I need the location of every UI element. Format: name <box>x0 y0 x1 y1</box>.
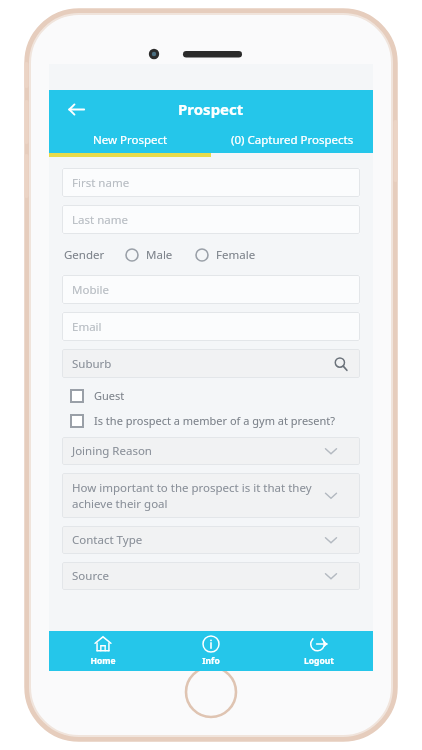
staticText: Gender <box>64 247 105 263</box>
staticText: Email <box>72 319 102 335</box>
staticText: Joining Reason <box>72 443 152 459</box>
button[interactable]: Contact Type <box>62 526 360 554</box>
button[interactable]: Back <box>61 94 91 124</box>
button[interactable]: How important to the prospect is it that… <box>62 473 360 518</box>
button[interactable]: Source <box>62 562 360 590</box>
staticText: Prospect <box>178 99 244 119</box>
staticText: Contact Type <box>72 532 143 548</box>
button[interactable]: Male <box>123 244 175 266</box>
staticText: New Prospect <box>93 132 168 148</box>
staticText: Home <box>90 655 116 667</box>
staticText: Logout <box>304 655 334 667</box>
staticText: Is the prospect a member of a gym at pre… <box>94 413 336 428</box>
staticText: Guest <box>94 388 125 403</box>
button[interactable]: Suburb <box>62 349 360 378</box>
button[interactable]: Info <box>157 631 265 671</box>
button[interactable]: Last name <box>62 205 360 234</box>
staticText: Source <box>72 568 109 584</box>
button[interactable]: Mobile <box>62 275 360 304</box>
staticText: Suburb <box>72 356 112 372</box>
button[interactable]: Joining Reason <box>62 437 360 465</box>
staticText: Last name <box>72 212 128 228</box>
button[interactable]: Home <box>49 631 157 671</box>
staticText: How important to the prospect is it that… <box>72 480 330 511</box>
staticText: Male <box>146 247 173 263</box>
staticText: Info <box>202 655 220 667</box>
button[interactable]: (0) Captured Prospects <box>211 127 373 153</box>
button[interactable]: First name <box>62 168 360 197</box>
staticText: First name <box>72 175 130 191</box>
button[interactable]: New Prospect <box>49 127 211 153</box>
button[interactable]: Female <box>193 244 258 266</box>
other: Search <box>332 355 350 373</box>
staticText: Female <box>216 247 256 263</box>
staticText: Mobile <box>72 282 109 298</box>
button[interactable]: Logout <box>265 631 373 671</box>
staticText: (0) Captured Prospects <box>231 132 354 148</box>
button[interactable]: Is the prospect a member of a gym at pre… <box>62 411 360 430</box>
button[interactable]: Guest <box>62 386 360 405</box>
button[interactable]: Email <box>62 312 360 341</box>
